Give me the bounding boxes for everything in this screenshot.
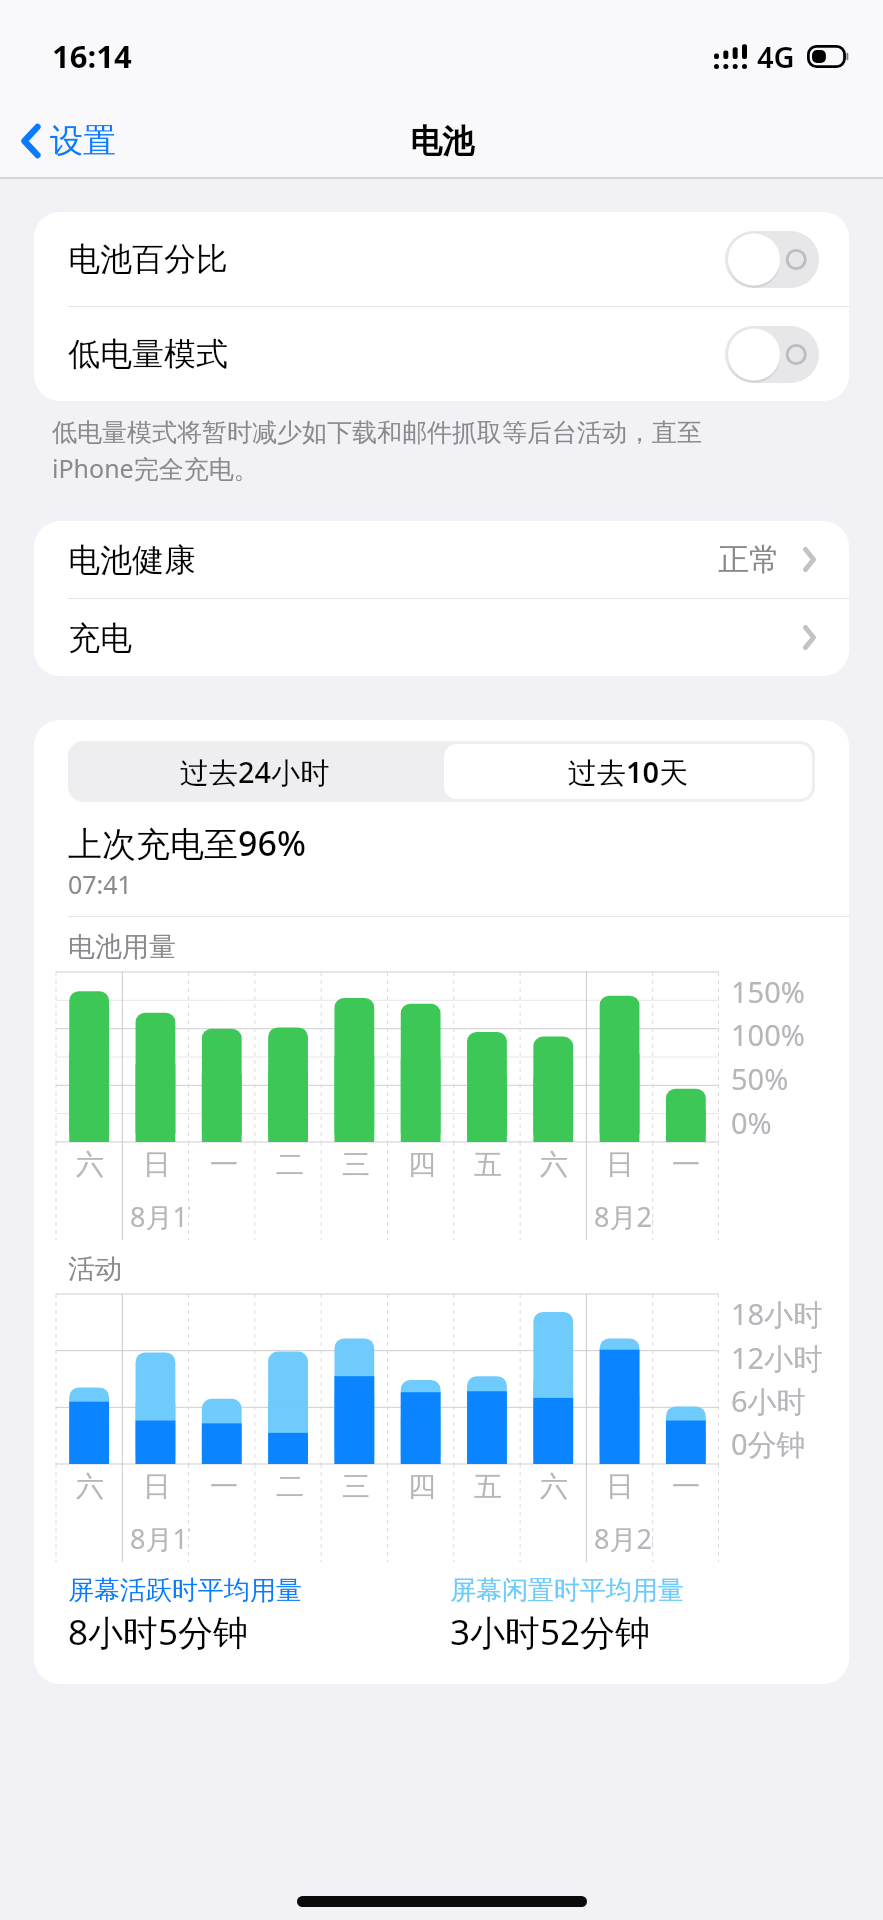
staticText: 电池健康 (68, 540, 196, 580)
staticText: 电池 (410, 121, 474, 161)
button[interactable]: 设置 (0, 114, 134, 168)
staticText: 07:41 (68, 867, 132, 901)
staticText: 日 (143, 1469, 171, 1504)
staticText: 过去10天 (568, 752, 689, 792)
staticText: 二 (276, 1147, 304, 1182)
button[interactable]: 充电 (34, 599, 849, 676)
staticText: 二 (276, 1469, 304, 1504)
staticText: 设置 (50, 120, 116, 162)
staticText: 日 (606, 1469, 634, 1504)
button[interactable]: 电池健康 (34, 521, 849, 598)
staticText: 日 (606, 1147, 634, 1182)
staticText: 充电 (68, 618, 132, 658)
button[interactable]: 电池百分比 (725, 231, 819, 288)
staticText: 6小时 (731, 1381, 806, 1421)
staticText: 三 (342, 1469, 370, 1504)
staticText: 六 (540, 1147, 568, 1182)
staticText: 屏幕闲置时平均用量 (450, 1574, 684, 1607)
button[interactable]: 低电量模式 (34, 307, 849, 401)
staticText: 低电量模式将暂时减少如下载和邮件抓取等后台活动，直至 iPhone完全充电。 (52, 417, 702, 486)
staticText: 一 (210, 1147, 238, 1182)
staticText: 电池百分比 (68, 239, 228, 279)
staticText: 五 (474, 1469, 502, 1504)
staticText: 活动 (68, 1252, 122, 1286)
staticText: 3小时52分钟 (450, 1608, 651, 1656)
staticText: 日 (143, 1147, 171, 1182)
button[interactable]: 过去24小时 (68, 741, 441, 802)
staticText: 0% (731, 1103, 772, 1142)
staticText: 屏幕活跃时平均用量 (68, 1574, 302, 1607)
staticText: 低电量模式 (68, 334, 228, 374)
button[interactable]: 低电量模式 (725, 326, 819, 383)
staticText: 一 (672, 1469, 700, 1504)
staticText: 8月17日 (130, 1198, 190, 1235)
staticText: 4G (757, 37, 795, 76)
staticText: 16:14 (52, 35, 132, 77)
staticText: 8月17日 (130, 1520, 190, 1557)
staticText: 电池用量 (68, 930, 176, 964)
staticText: 18小时 (731, 1294, 823, 1334)
button[interactable]: 电池百分比 (34, 212, 849, 306)
staticText: 100% (731, 1015, 805, 1054)
staticText: 三 (342, 1147, 370, 1182)
staticText: 50% (731, 1059, 789, 1098)
staticText: 上次充电至96% (68, 820, 306, 866)
staticText: 四 (408, 1469, 436, 1504)
staticText: 正常 (718, 540, 780, 579)
button[interactable]: 过去10天 (444, 744, 812, 799)
staticText: 六 (540, 1469, 568, 1504)
staticText: 一 (210, 1469, 238, 1504)
staticText: 六 (76, 1147, 104, 1182)
staticText: 六 (76, 1469, 104, 1504)
staticText: 150% (731, 972, 805, 1011)
staticText: 过去24小时 (180, 752, 330, 792)
staticText: 0分钟 (731, 1424, 806, 1464)
staticText: 五 (474, 1147, 502, 1182)
staticText: 8月24日 (594, 1198, 653, 1235)
staticText: 一 (672, 1147, 700, 1182)
staticText: 12小时 (731, 1338, 823, 1378)
staticText: 四 (408, 1147, 436, 1182)
staticText: 8月24日 (594, 1520, 653, 1557)
staticText: 8小时5分钟 (68, 1608, 249, 1656)
